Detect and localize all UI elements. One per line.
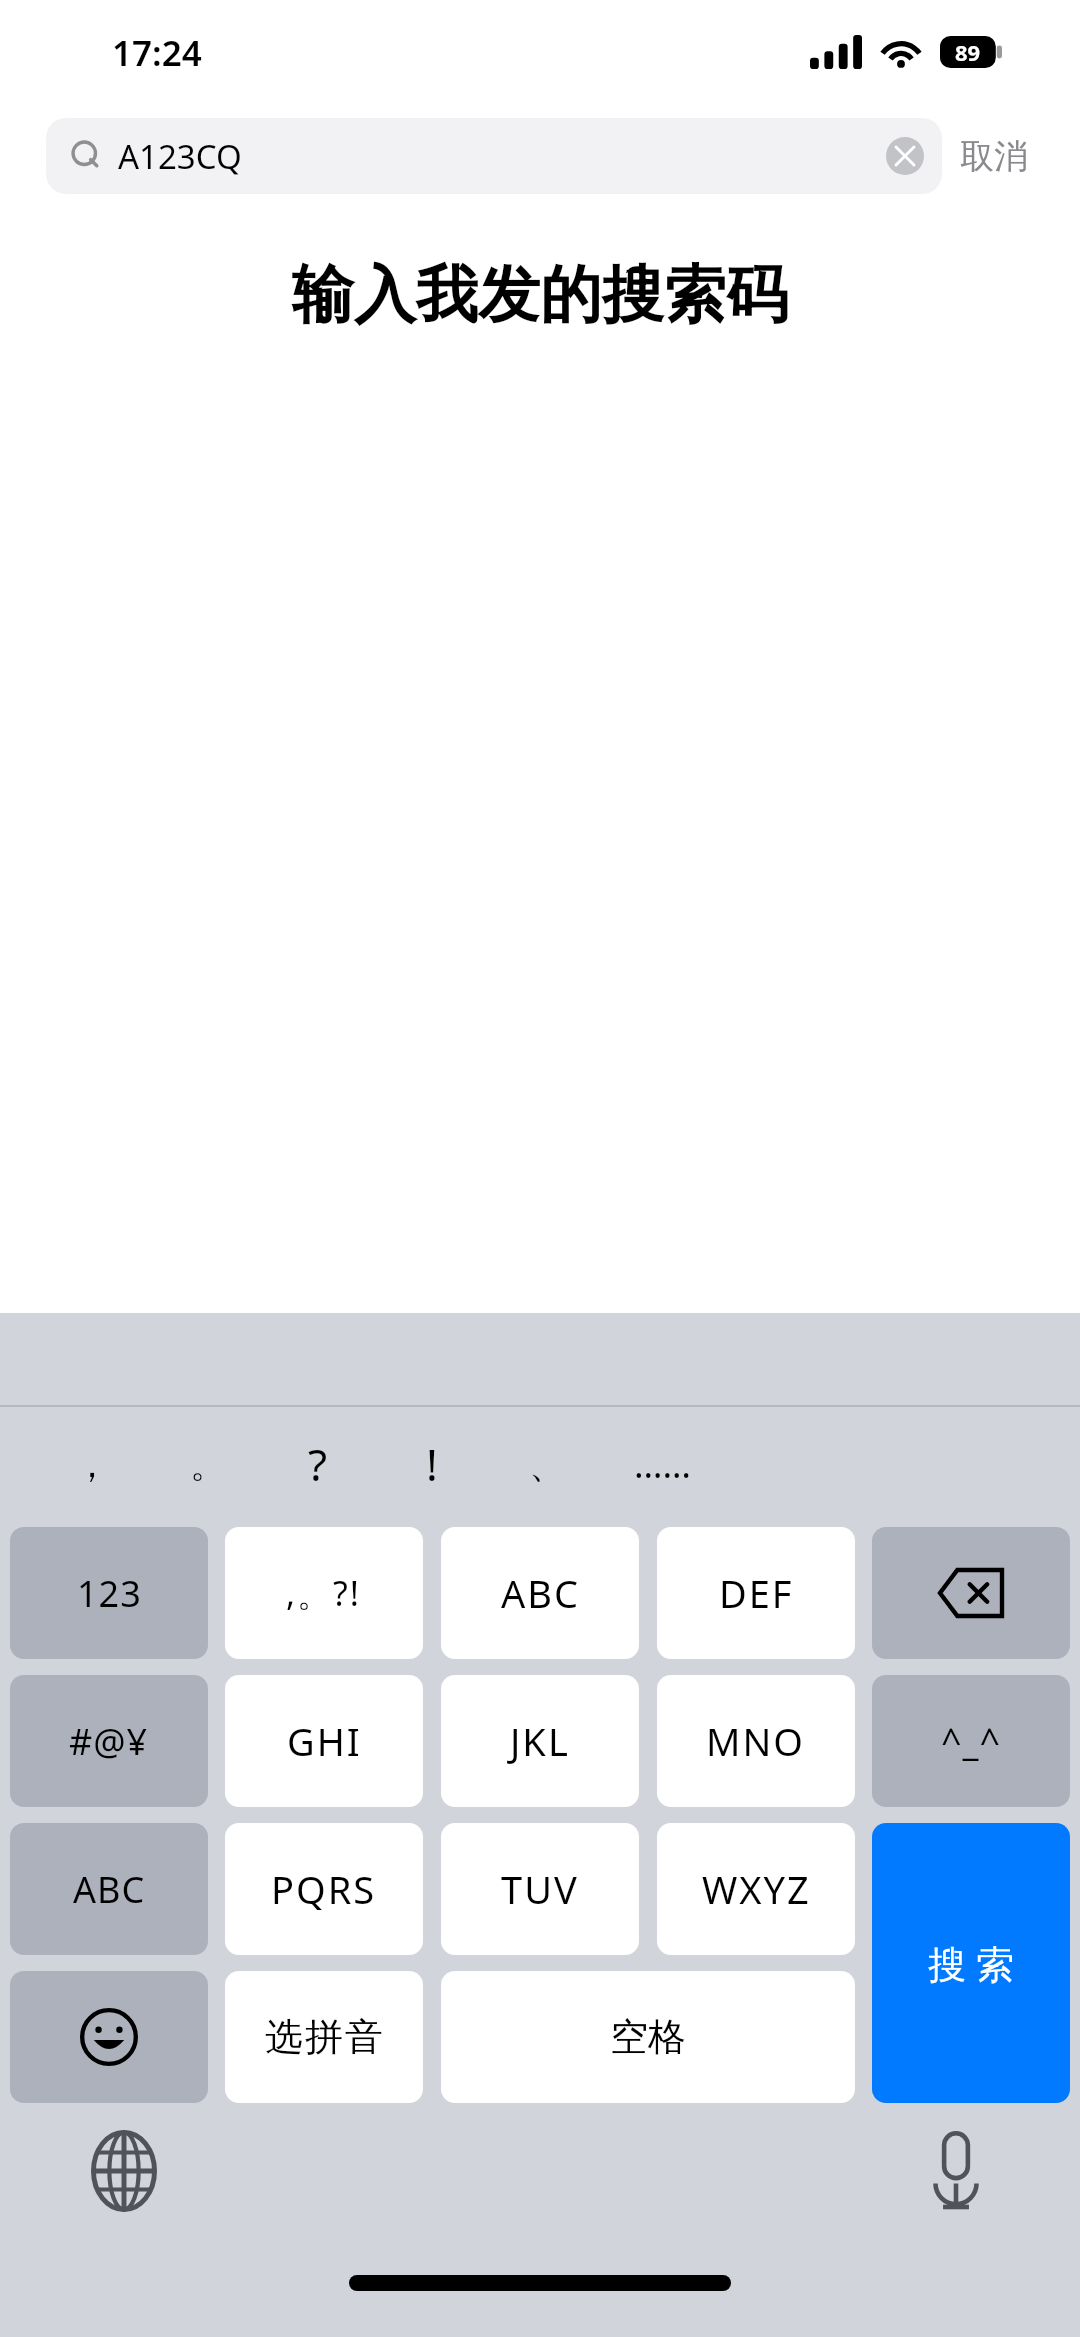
staticText: GHI [287, 1715, 362, 1767]
button[interactable]: ABC [10, 1823, 208, 1955]
staticText: 输入我发的搜索码 [292, 256, 788, 334]
button[interactable]: #@¥ [10, 1675, 208, 1807]
button[interactable]: ? [266, 1407, 370, 1521]
button[interactable]: ABC [441, 1527, 639, 1659]
staticText: 、 [529, 1442, 565, 1487]
button[interactable]: Backspace [872, 1527, 1070, 1659]
staticText: A123CQ [118, 134, 886, 179]
button[interactable]: PQRS [225, 1823, 423, 1955]
button[interactable]: Emoji keyboard [10, 1971, 208, 2103]
staticText: MNO [706, 1715, 806, 1767]
staticText: JKL [510, 1715, 570, 1767]
staticText: …… [634, 1440, 691, 1489]
staticText: 取消 [960, 135, 1028, 178]
button[interactable]: DEF [657, 1527, 855, 1659]
staticText: 选拼音 [264, 2013, 384, 2061]
button[interactable]: 取消 [942, 125, 1046, 188]
staticText: TUV [501, 1863, 579, 1915]
staticText: 搜 索 [928, 1937, 1014, 1989]
button[interactable]: Clear text [886, 137, 924, 175]
staticText: DEF [719, 1567, 794, 1619]
button[interactable]: 空格 [441, 1971, 855, 2103]
staticText: 17:24 [112, 29, 202, 77]
button[interactable]: 123 [10, 1527, 208, 1659]
staticText: 空格 [610, 2013, 686, 2061]
staticText: 。 [190, 1442, 226, 1487]
button[interactable]: 选拼音 [225, 1971, 423, 2103]
staticText: 89 [955, 37, 981, 67]
button[interactable]: ^_^ [872, 1675, 1070, 1807]
button[interactable]: WXYZ [657, 1823, 855, 1955]
button[interactable]: Switch keyboard language [76, 2123, 172, 2219]
button[interactable]: GHI [225, 1675, 423, 1807]
button[interactable]: JKL [441, 1675, 639, 1807]
button[interactable]: ! [380, 1407, 484, 1521]
staticText: #@¥ [69, 1717, 149, 1766]
button[interactable]: ,。?! [225, 1527, 423, 1659]
staticText: ABC [501, 1567, 580, 1619]
button[interactable]: ， [40, 1407, 144, 1521]
button[interactable]: …… [610, 1407, 714, 1521]
button[interactable]: 、 [495, 1407, 599, 1521]
button[interactable]: A123CQ [46, 118, 942, 194]
button[interactable]: 搜 索 [872, 1823, 1070, 2103]
staticText: ? [308, 1434, 328, 1494]
staticText: ! [426, 1434, 438, 1494]
button[interactable]: TUV [441, 1823, 639, 1955]
staticText: PQRS [271, 1863, 377, 1915]
staticText: 123 [77, 1569, 142, 1618]
staticText: ^_^ [941, 1717, 1002, 1766]
button[interactable]: 。 [156, 1407, 260, 1521]
staticText: ,。?! [286, 1570, 362, 1616]
button[interactable]: MNO [657, 1675, 855, 1807]
staticText: WXYZ [702, 1863, 811, 1915]
button[interactable]: Voice input [908, 2123, 1004, 2219]
staticText: ABC [73, 1865, 146, 1914]
staticText: ， [74, 1442, 110, 1487]
